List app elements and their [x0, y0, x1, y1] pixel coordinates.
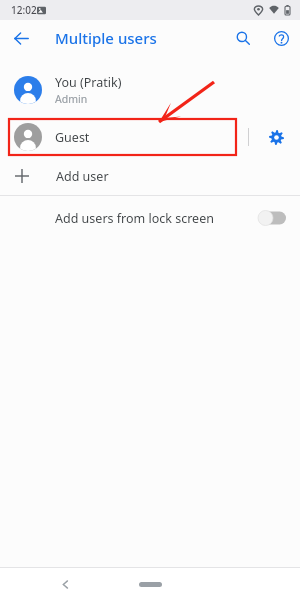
staticText: Guest: [55, 129, 90, 146]
staticText: You (Pratik): [55, 74, 122, 91]
staticText: Admin: [55, 92, 88, 106]
button[interactable]: Back: [52, 571, 78, 597]
button[interactable]: Add users from lock screen: [0, 196, 300, 240]
staticText: Add users from lock screen: [55, 210, 214, 227]
button[interactable]: Add user: [0, 157, 300, 195]
button[interactable]: Back: [7, 24, 35, 52]
staticText: Multiple users: [55, 28, 157, 48]
button[interactable]: You (Pratik): [0, 69, 300, 111]
button[interactable]: Home: [130, 576, 170, 592]
button[interactable]: Help: [267, 24, 295, 52]
staticText: 12:02: [11, 3, 37, 17]
button[interactable]: Guest settings: [261, 122, 291, 152]
staticText: Add user: [56, 168, 109, 185]
button[interactable]: Search: [229, 24, 257, 52]
button[interactable]: Guest: [0, 119, 236, 155]
